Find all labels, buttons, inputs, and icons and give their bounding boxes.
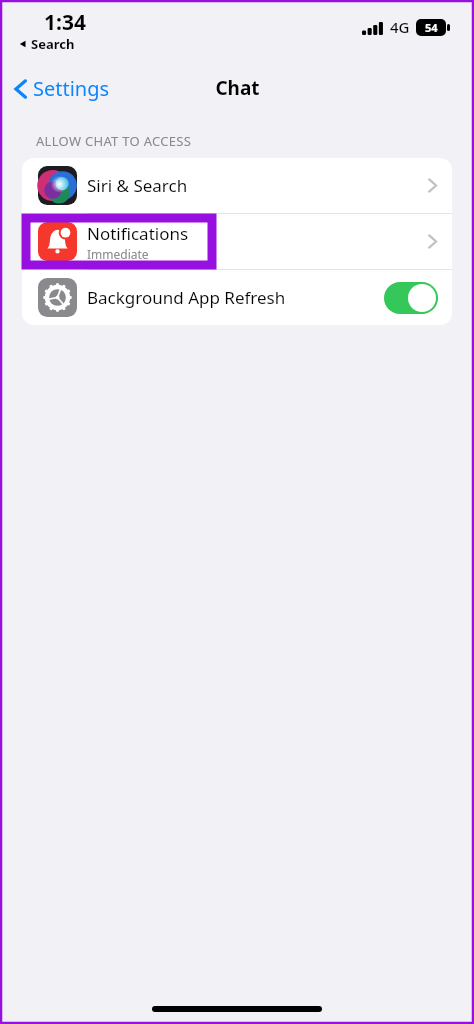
staticText: 4G xyxy=(390,17,410,37)
staticText: Background App Refresh xyxy=(87,286,286,309)
other: Open xyxy=(427,176,438,195)
staticText: Notifications xyxy=(87,222,189,245)
button[interactable]: Settings xyxy=(10,71,114,106)
button[interactable]: Background App Refresh toggle, on xyxy=(384,282,438,314)
button[interactable]: Siri & Search xyxy=(22,158,452,213)
staticText: 54 xyxy=(425,20,438,35)
button[interactable]: Notifications xyxy=(22,214,452,269)
staticText: Siri & Search xyxy=(87,174,188,197)
staticText: ALLOW CHAT TO ACCESS xyxy=(36,132,192,150)
staticText: Chat xyxy=(215,75,260,101)
staticText: Settings xyxy=(33,75,110,102)
other: Open xyxy=(427,232,438,251)
button[interactable]: Background App Refresh xyxy=(22,270,452,325)
staticText: Immediate xyxy=(87,246,149,262)
staticText: 1:34 xyxy=(44,8,86,37)
staticText: Search xyxy=(31,35,75,53)
